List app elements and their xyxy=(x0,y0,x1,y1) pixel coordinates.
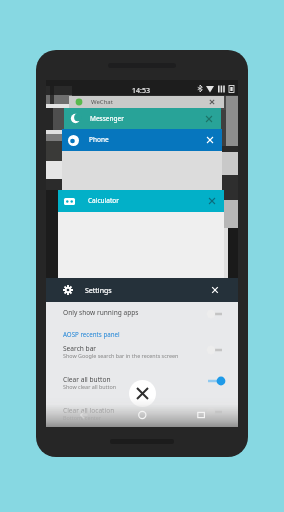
button[interactable]: Back xyxy=(74,405,94,425)
staticText: AOSP recents panel xyxy=(63,330,120,338)
staticText: Bottom, center xyxy=(63,414,101,421)
staticText: Calculator xyxy=(88,196,119,205)
button[interactable]: Search bar xyxy=(46,344,238,368)
staticText: Show clear all button xyxy=(63,383,117,390)
button[interactable]: Close Calculator xyxy=(206,195,218,207)
button[interactable]: Close Messenger xyxy=(203,113,215,125)
button[interactable]: Calculator xyxy=(58,190,224,212)
staticText: Only show running apps xyxy=(63,308,139,317)
staticText: Show Google search bar in the recents sc… xyxy=(63,352,179,359)
staticText: Settings xyxy=(85,286,112,296)
button[interactable]: Close Phone xyxy=(204,134,216,146)
staticText: Search bar xyxy=(63,344,97,353)
button[interactable]: Clear all xyxy=(129,380,156,407)
button[interactable]: Close WeChat xyxy=(206,96,218,108)
button[interactable]: Phone xyxy=(62,129,222,151)
staticText: Messenger xyxy=(90,114,124,123)
staticText: Clear all button xyxy=(63,375,111,384)
button[interactable]: Only show running apps xyxy=(46,308,238,326)
button[interactable]: Recents xyxy=(191,405,211,425)
button[interactable]: Messenger xyxy=(64,108,221,129)
button[interactable]: WeChat xyxy=(69,96,224,108)
button[interactable]: Home xyxy=(132,405,152,425)
button[interactable]: Close settings xyxy=(208,283,222,297)
button[interactable]: Clear all button xyxy=(46,375,238,399)
staticText: WeChat xyxy=(91,98,113,106)
button[interactable]: Settings xyxy=(46,278,238,302)
button[interactable]: Clear all location xyxy=(46,406,238,427)
staticText: 14:53 xyxy=(132,86,150,96)
staticText: Clear all location xyxy=(63,406,115,415)
staticText: Phone xyxy=(89,135,109,144)
